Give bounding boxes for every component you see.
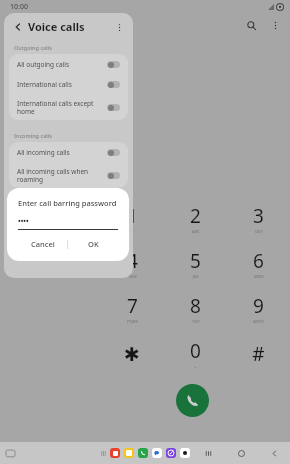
- button[interactable]: Cancel: [18, 239, 67, 249]
- button[interactable]: 2: [164, 196, 227, 241]
- button[interactable]: 6: [227, 241, 290, 286]
- button[interactable]: Keyboard: [6, 449, 15, 458]
- staticText: International calls except home: [17, 99, 103, 116]
- button[interactable]: App: [124, 448, 134, 458]
- staticText: 7: [127, 293, 138, 319]
- button[interactable]: All incoming calls when roaming: [9, 162, 128, 188]
- staticText: JKL: [193, 274, 199, 279]
- button[interactable]: All outgoing calls: [9, 54, 128, 74]
- staticText: All incoming calls when roaming: [17, 167, 103, 184]
- button[interactable]: International calls except home: [9, 94, 128, 120]
- staticText: Cancel: [31, 239, 55, 249]
- staticText: 10:00: [10, 2, 28, 12]
- staticText: 6: [253, 248, 264, 274]
- button[interactable]: ✱: [100, 331, 164, 376]
- button[interactable]: 5: [164, 241, 227, 286]
- staticText: ABC: [192, 229, 200, 234]
- staticText: PQRS: [127, 319, 138, 324]
- staticText: MNO: [254, 274, 264, 279]
- staticText: All incoming calls: [17, 148, 103, 157]
- staticText: 4: [127, 248, 138, 274]
- button[interactable]: Home: [236, 448, 247, 459]
- staticText: OK: [88, 239, 99, 249]
- staticText: 8: [190, 293, 201, 319]
- staticText: All outgoing calls: [17, 60, 103, 69]
- staticText: Incoming calls: [14, 132, 52, 139]
- staticText: ••••: [18, 217, 29, 227]
- staticText: GHI: [129, 274, 137, 279]
- button[interactable]: App: [166, 448, 176, 458]
- staticText: WXYZ: [253, 319, 264, 324]
- staticText: 3: [253, 203, 264, 229]
- staticText: +: [194, 364, 197, 369]
- staticText: 5: [190, 248, 201, 274]
- button[interactable]: 1: [100, 196, 164, 241]
- staticText: ✱: [124, 343, 140, 365]
- staticText: #: [252, 341, 265, 367]
- staticText: 2: [190, 203, 201, 229]
- staticText: 0: [190, 338, 201, 364]
- button[interactable]: 3: [227, 196, 290, 241]
- button[interactable]: App: [138, 448, 148, 458]
- button[interactable]: 4: [100, 241, 164, 286]
- staticText: ∞: [131, 229, 135, 234]
- button[interactable]: 9: [227, 286, 290, 331]
- button[interactable]: App: [110, 448, 120, 458]
- staticText: Voice calls: [28, 19, 85, 34]
- button[interactable]: Back: [269, 448, 280, 459]
- button[interactable]: Search: [244, 18, 258, 32]
- staticText: 9: [253, 293, 264, 319]
- button[interactable]: Recents: [203, 448, 214, 459]
- staticText: 1: [127, 203, 138, 229]
- button[interactable]: OK: [68, 239, 118, 249]
- staticText: DEF: [255, 229, 263, 234]
- button[interactable]: 7: [100, 286, 164, 331]
- button[interactable]: App: [180, 448, 190, 458]
- button[interactable]: International calls: [9, 74, 128, 94]
- button[interactable]: #: [227, 331, 290, 376]
- button[interactable]: Back: [11, 20, 25, 34]
- button[interactable]: More options: [268, 18, 282, 32]
- staticText: Enter call barring password: [18, 198, 117, 208]
- button[interactable]: More options: [112, 20, 126, 34]
- button[interactable]: Call: [176, 384, 209, 417]
- button[interactable]: All incoming calls: [9, 142, 128, 162]
- staticText: International calls: [17, 80, 103, 89]
- staticText: TUV: [192, 319, 200, 324]
- staticText: Outgoing calls: [14, 44, 52, 51]
- button[interactable]: 8: [164, 286, 227, 331]
- button[interactable]: 0: [164, 331, 227, 376]
- button[interactable]: App: [152, 448, 162, 458]
